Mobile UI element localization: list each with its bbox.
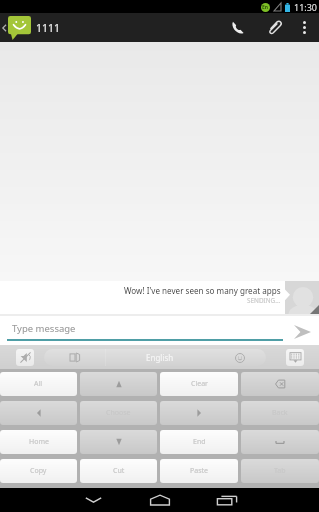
button[interactable]: Emoji	[213, 349, 266, 366]
staticText: 11:30	[294, 1, 318, 13]
button[interactable]: Change keyboard	[286, 349, 304, 366]
button[interactable]: Clear	[160, 372, 238, 396]
staticText: All	[34, 379, 43, 389]
staticText: Cut	[113, 466, 125, 476]
button[interactable]: Navigate up	[0, 13, 36, 42]
button[interactable]: Voice input off	[16, 349, 34, 366]
staticText: Home	[29, 437, 49, 447]
button[interactable]	[241, 430, 319, 454]
button[interactable]: Back	[241, 401, 319, 425]
button[interactable]	[241, 372, 319, 396]
button[interactable]: Copy	[0, 459, 77, 483]
staticText: En	[262, 4, 269, 11]
staticText: Clear	[191, 379, 208, 389]
staticText: Wow! I've never seen so many great apps	[124, 285, 281, 296]
button[interactable]: Paste	[160, 459, 238, 483]
button[interactable]: Recent apps	[207, 488, 247, 512]
button[interactable]: Contact photo	[285, 281, 319, 314]
staticText: 1111	[36, 21, 61, 35]
button[interactable]	[80, 430, 157, 454]
staticText: Copy	[30, 466, 47, 476]
button[interactable]: Send	[282, 316, 319, 345]
staticText: Back	[272, 408, 288, 418]
staticText: English	[146, 352, 174, 363]
staticText: Tab	[274, 466, 286, 476]
button[interactable]: More options	[292, 13, 316, 42]
button[interactable]: End	[160, 430, 238, 454]
button[interactable]	[0, 401, 77, 425]
button[interactable]: Dictionary	[44, 349, 106, 366]
button[interactable]: Cut	[80, 459, 157, 483]
button[interactable]: Choose	[80, 401, 157, 425]
button[interactable]: Home	[140, 488, 180, 512]
staticText: Paste	[190, 466, 208, 476]
button[interactable]: Attach	[256, 13, 292, 42]
button[interactable]: Call	[220, 13, 256, 42]
button[interactable]: Tab	[241, 459, 319, 483]
button[interactable]: All	[0, 372, 77, 396]
staticText: End	[193, 437, 206, 447]
staticText: Choose	[106, 408, 131, 418]
button[interactable]	[0, 281, 319, 314]
button[interactable]	[80, 372, 157, 396]
button[interactable]: Hide keyboard	[73, 488, 113, 512]
button[interactable]	[160, 401, 238, 425]
button[interactable]: Home	[0, 430, 77, 454]
staticText: Type message	[12, 322, 76, 335]
button[interactable]: English	[106, 349, 213, 366]
staticText: SENDING...	[247, 296, 281, 305]
